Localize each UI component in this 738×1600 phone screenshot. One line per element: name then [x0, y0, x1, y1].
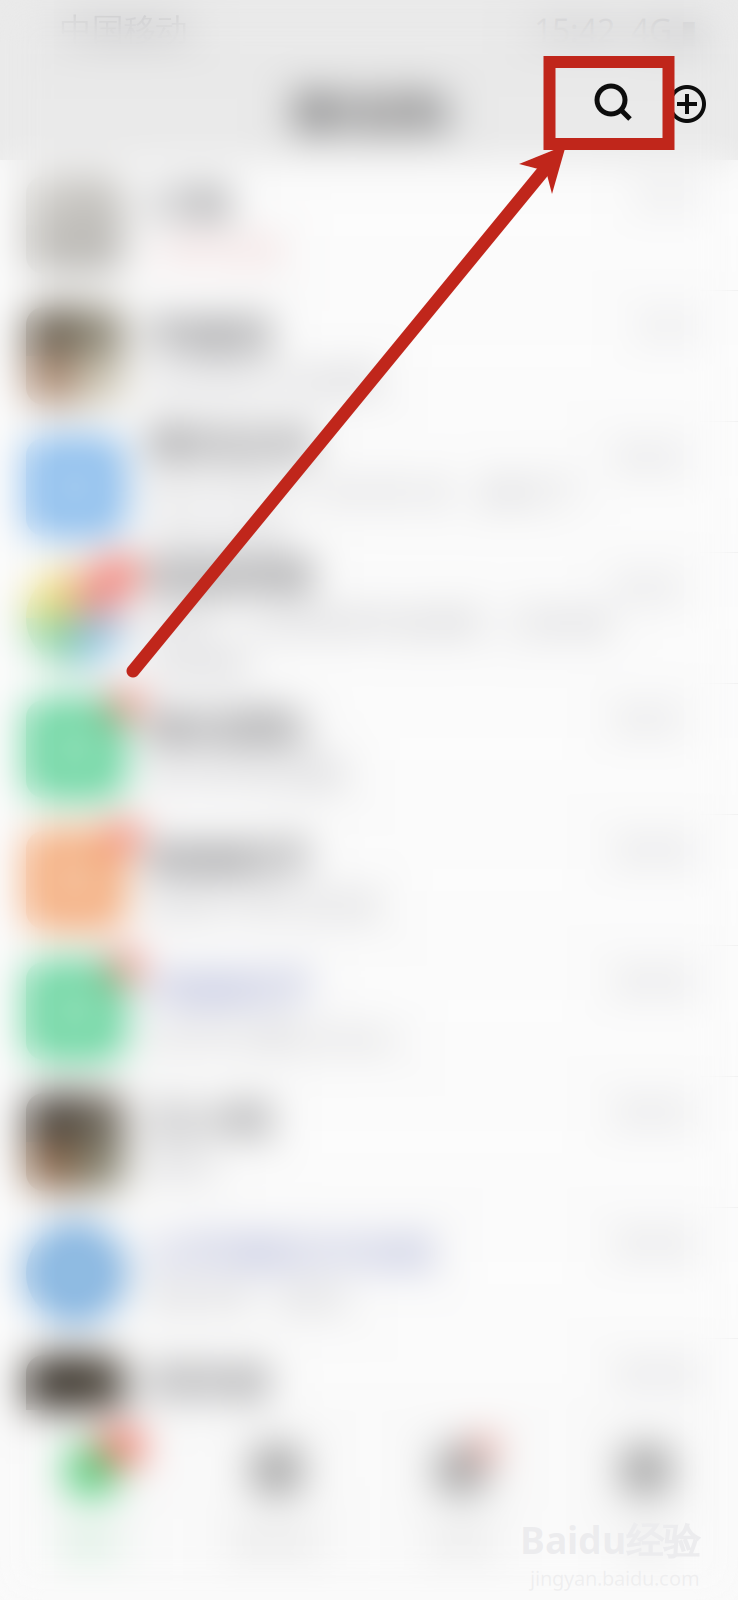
staticText: 微信(5) — [291, 78, 446, 142]
button[interactable]: 微信团队 — [0, 684, 738, 814]
button[interactable]: 发现 — [369, 1410, 553, 1600]
staticText: [文件] 报告.docx — [148, 1014, 395, 1059]
staticText: 家庭群聊 — [148, 552, 312, 602]
button[interactable]: 同学群 — [0, 1339, 738, 1469]
button[interactable]: 订阅 — [0, 160, 738, 290]
staticText: 张经理：收到 — [148, 1278, 346, 1319]
staticText: 王小明 — [148, 1096, 271, 1147]
button[interactable]: 微信 — [0, 1410, 184, 1600]
staticText: 你今天走了 8,432 步，超过了 76% 好友 — [148, 468, 581, 557]
staticText: 传输助手 — [148, 963, 312, 1014]
staticText: 购物助手 — [148, 834, 312, 885]
staticText: 收到 — [148, 1147, 214, 1188]
button[interactable]: 我 — [553, 1410, 738, 1600]
staticText: 同学群 — [148, 1358, 271, 1409]
button[interactable]: 王小明 — [0, 1077, 738, 1207]
staticText: 我 — [632, 1527, 659, 1560]
staticText: 好的明天见面聊 — [148, 361, 379, 402]
staticText: 李建国 — [148, 310, 271, 361]
button[interactable]: 通讯录 — [184, 1410, 369, 1600]
button[interactable]: 李建国 — [0, 291, 738, 421]
staticText: 妈妈：记得按时吃饭哦，注意身体健康 — [148, 602, 610, 684]
button[interactable]: Add — [653, 73, 721, 135]
staticText: 微信运动 — [148, 417, 312, 468]
staticText: 订阅 — [148, 179, 230, 230]
staticText: 您的订单已发货 — [148, 885, 379, 926]
staticText: 中国移动 — [60, 10, 188, 50]
staticText: 人民日报 — [148, 230, 280, 271]
staticText: 微信团队 — [148, 703, 312, 754]
staticText: jingyan.baidu.com — [530, 1565, 700, 1591]
staticText: 安全登录提醒 — [148, 754, 346, 795]
staticText: 周末聚会 — [148, 1409, 280, 1450]
staticText: 公司项目讨论组 — [148, 1227, 435, 1278]
button[interactable]: 传输助手 — [0, 946, 738, 1076]
button[interactable]: Search — [573, 72, 649, 134]
staticText: Baidu经验 — [520, 1515, 700, 1565]
button[interactable]: 家庭群聊 — [0, 553, 738, 683]
button[interactable]: 购物助手 — [0, 815, 738, 945]
button[interactable]: 微信运动 — [0, 422, 738, 552]
button[interactable]: 公司项目讨论组 — [0, 1208, 738, 1338]
